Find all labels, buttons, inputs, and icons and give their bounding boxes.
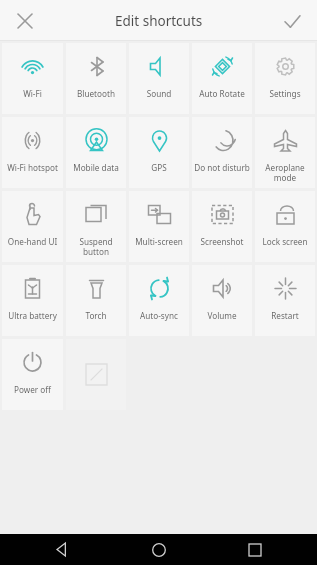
staticText: Settings <box>256 88 314 99</box>
staticText: GPS <box>130 162 188 173</box>
button[interactable]: Confirm <box>275 4 309 38</box>
staticText: Torch <box>67 310 125 321</box>
staticText: Wi-Fi hotspot <box>3 162 62 173</box>
staticText: Power off <box>3 384 62 395</box>
button[interactable]: Restart <box>255 265 315 336</box>
staticText: Lock screen <box>256 236 314 247</box>
button[interactable]: Recent apps <box>220 534 290 565</box>
staticText: Sound <box>130 88 188 99</box>
staticText: Ultra battery <box>3 310 62 321</box>
staticText: Wi-Fi <box>3 88 62 99</box>
button[interactable]: Sound <box>129 43 189 114</box>
button[interactable]: Home <box>124 534 194 565</box>
button[interactable]: Lock screen <box>255 191 315 262</box>
staticText: Edit shortcuts <box>115 12 203 30</box>
staticText: Multi-screen <box>130 236 188 247</box>
button[interactable]: Multi-screen <box>129 191 189 262</box>
button[interactable]: Auto-sync <box>129 265 189 336</box>
button[interactable]: Aeroplane mode <box>255 117 315 188</box>
button[interactable]: Close <box>8 4 42 38</box>
button[interactable]: Back <box>27 534 97 565</box>
button[interactable]: Wi-Fi hotspot <box>2 117 63 188</box>
staticText: Suspend button <box>67 236 125 257</box>
staticText: Auto Rotate <box>193 88 251 99</box>
button[interactable]: Empty slot <box>66 339 126 410</box>
button[interactable]: Mobile data <box>66 117 126 188</box>
staticText: Bluetooth <box>67 88 125 99</box>
button[interactable]: Bluetooth <box>66 43 126 114</box>
button[interactable]: GPS <box>129 117 189 188</box>
button[interactable]: Volume <box>192 265 252 336</box>
button[interactable]: Do not disturb <box>192 117 252 188</box>
button[interactable]: Screenshot <box>192 191 252 262</box>
staticText: Volume <box>193 310 251 321</box>
staticText: Mobile data <box>67 162 125 173</box>
staticText: Do not disturb <box>193 162 251 173</box>
staticText: Aeroplane mode <box>256 162 314 183</box>
button[interactable]: Auto Rotate <box>192 43 252 114</box>
staticText: Auto-sync <box>130 310 188 321</box>
button[interactable]: Settings <box>255 43 315 114</box>
button[interactable]: Power off <box>2 339 63 410</box>
button[interactable]: Suspend button <box>66 191 126 262</box>
staticText: Restart <box>256 310 314 321</box>
button[interactable]: One-hand UI <box>2 191 63 262</box>
button[interactable]: Wi-Fi <box>2 43 63 114</box>
button[interactable]: Torch <box>66 265 126 336</box>
staticText: One-hand UI <box>3 236 62 247</box>
staticText: Screenshot <box>193 236 251 247</box>
button[interactable]: Ultra battery <box>2 265 63 336</box>
